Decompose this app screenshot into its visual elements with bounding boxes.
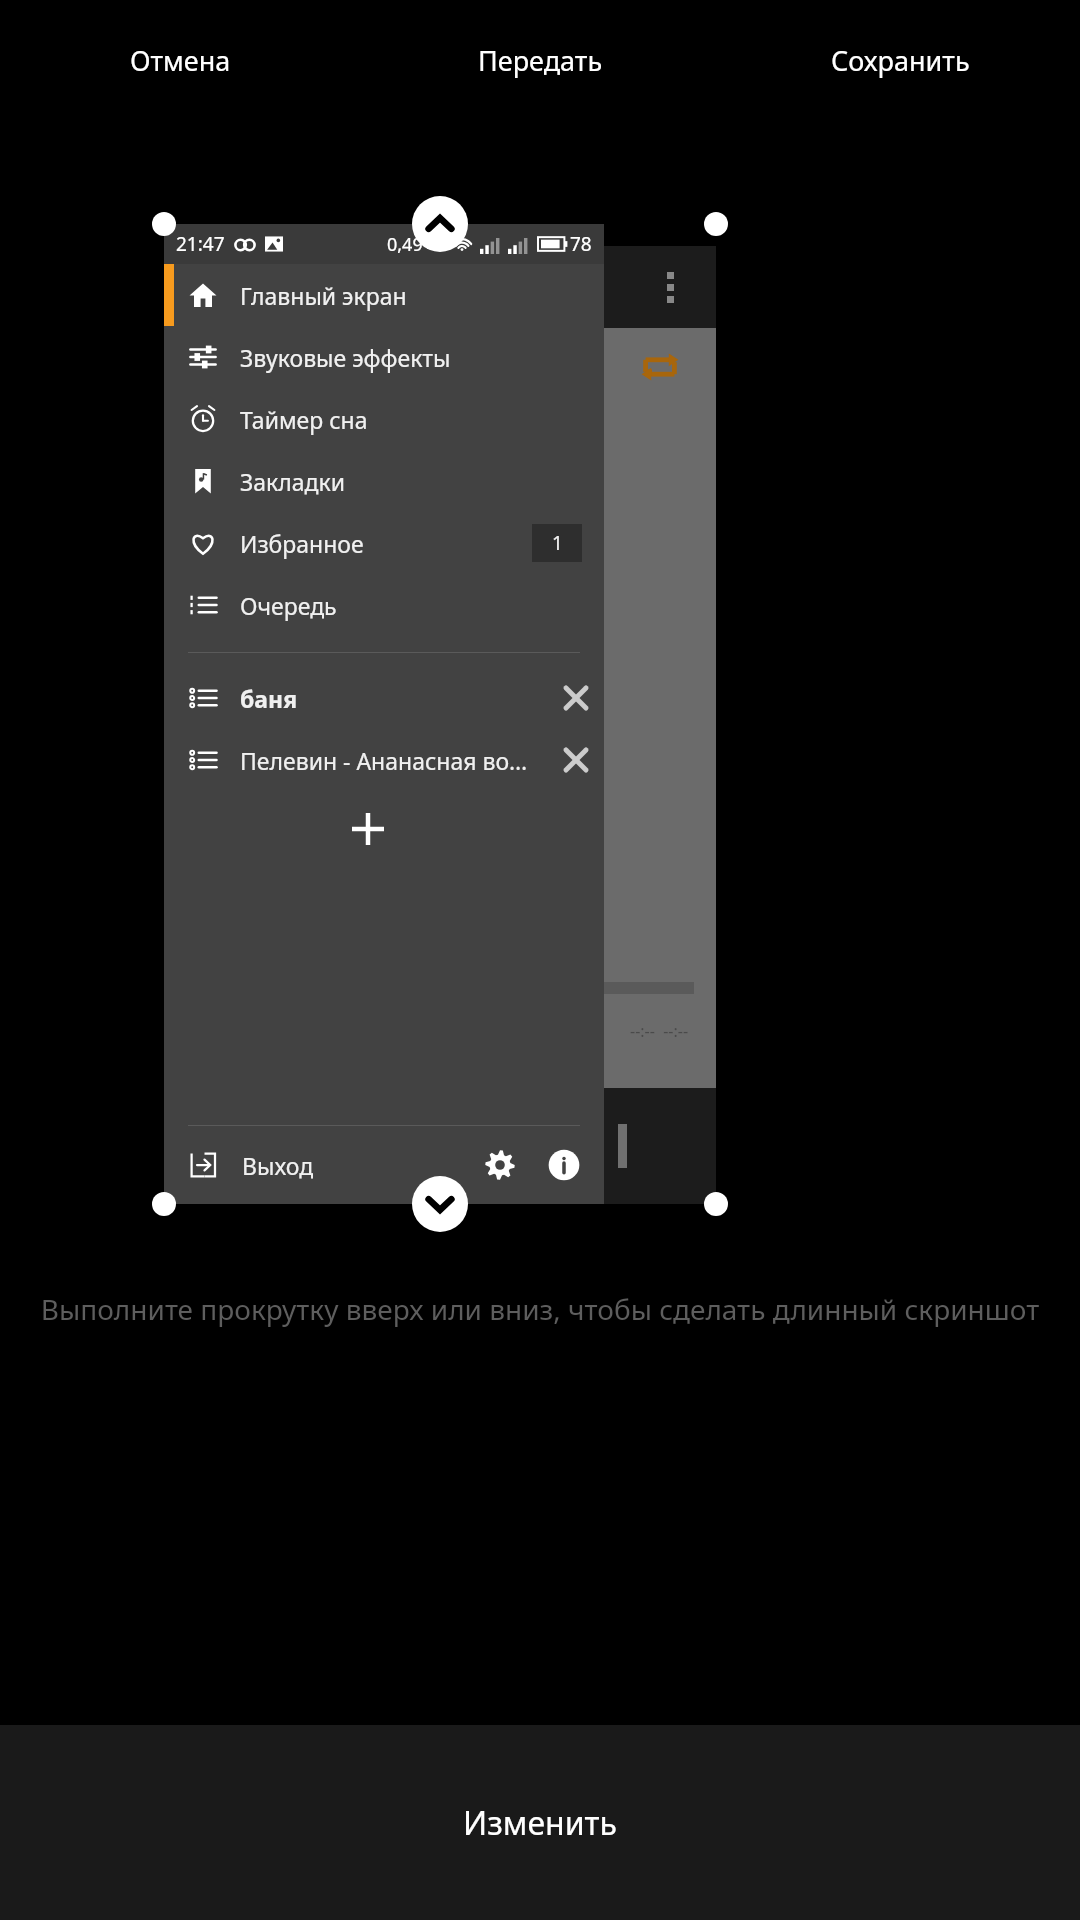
staticText: Закладки <box>240 466 590 497</box>
button[interactable]: Добавить плейлист <box>164 791 604 867</box>
button[interactable]: Передать <box>360 0 720 120</box>
staticText: 78 <box>570 231 592 257</box>
staticText: Отмена <box>130 42 231 79</box>
button[interactable]: Звуковые эффекты <box>164 326 604 388</box>
button[interactable]: Расширить вверх <box>412 196 468 252</box>
staticText: Таймер сна <box>240 404 590 435</box>
staticText: баня <box>240 683 548 714</box>
button[interactable]: Таймер сна <box>164 388 604 450</box>
staticText: Избранное <box>240 528 532 559</box>
button[interactable]: Выход <box>164 1126 468 1204</box>
staticText: Сохранить <box>831 42 970 79</box>
staticText: Выход <box>242 1150 314 1181</box>
staticText: Выполните прокрутку вверх или вниз, чтоб… <box>8 1290 1072 1328</box>
button[interactable]: Удалить <box>548 732 604 788</box>
staticText: 21:47 <box>176 231 225 257</box>
staticText: 1 <box>552 530 563 556</box>
staticText: --:-- --:-- <box>630 1020 689 1042</box>
button[interactable]: Главный экран <box>164 264 604 326</box>
staticText: Звуковые эффекты <box>240 342 590 373</box>
staticText: Изменить <box>463 1801 617 1845</box>
button[interactable]: Закладки <box>164 450 604 512</box>
staticText: Пелевин - Ананасная во… <box>240 745 548 776</box>
button[interactable]: Очередь <box>164 574 604 636</box>
button[interactable]: Информация <box>532 1133 596 1197</box>
button[interactable]: Пелевин - Ананасная во… <box>164 729 604 791</box>
button[interactable]: Отмена <box>0 0 360 120</box>
button[interactable]: Удалить <box>548 670 604 726</box>
staticText: 0,49 <box>387 232 423 257</box>
staticText: K/s <box>426 236 444 252</box>
button[interactable]: Изменить <box>0 1725 1080 1920</box>
button[interactable]: Расширить вниз <box>412 1176 468 1232</box>
button[interactable]: Избранное <box>164 512 604 574</box>
button[interactable]: баня <box>164 667 604 729</box>
staticText: Очередь <box>240 590 590 621</box>
staticText: Главный экран <box>240 280 590 311</box>
button[interactable]: Сохранить <box>720 0 1080 120</box>
staticText: Передать <box>478 42 603 79</box>
button[interactable]: Настройки <box>468 1133 532 1197</box>
